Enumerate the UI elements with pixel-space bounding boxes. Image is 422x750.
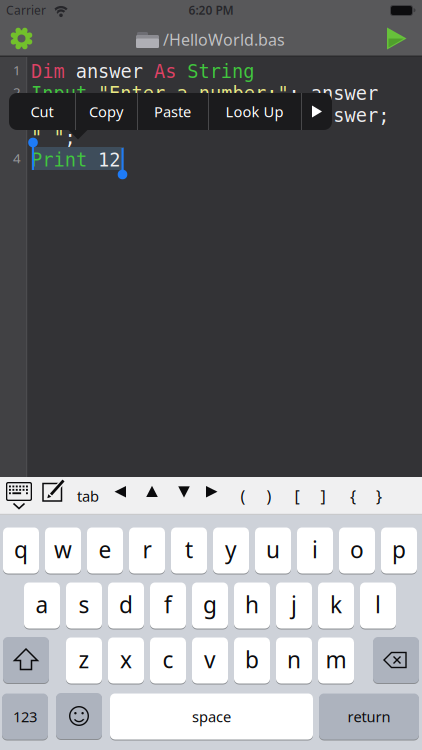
staticText: ( — [240, 485, 245, 507]
button[interactable]: g — [192, 582, 228, 629]
staticText: ] — [320, 485, 325, 507]
button[interactable]: z — [66, 637, 102, 684]
staticText: l — [375, 589, 381, 619]
button[interactable]: h — [234, 582, 270, 629]
staticText: k — [330, 589, 342, 619]
staticText: r — [142, 534, 151, 564]
button[interactable]: Paste — [137, 93, 208, 130]
button[interactable]: a — [24, 582, 60, 629]
button[interactable]: i — [297, 527, 333, 574]
staticText: Dim — [31, 61, 64, 82]
button[interactable]: ] — [310, 477, 336, 515]
button[interactable]: m — [318, 637, 354, 684]
staticText: 6:20 PM — [188, 2, 233, 18]
staticText: a — [35, 589, 48, 619]
staticText: q — [14, 534, 28, 564]
button[interactable]: w — [45, 527, 81, 574]
button[interactable]: Edit — [40, 477, 70, 515]
button[interactable]: d — [108, 582, 144, 629]
button[interactable]: y — [213, 527, 249, 574]
button[interactable]: Cut — [9, 93, 75, 130]
staticText: b — [245, 644, 259, 674]
staticText: Print — [31, 149, 87, 171]
staticText: z — [78, 644, 89, 674]
button[interactable]: Shift — [3, 637, 49, 684]
button[interactable]: Move cursor right — [198, 477, 224, 515]
staticText: " " — [31, 127, 64, 148]
button[interactable]: ( — [230, 477, 256, 515]
button[interactable]: r — [129, 527, 165, 574]
button[interactable]: space — [110, 693, 313, 740]
button[interactable]: tab — [75, 477, 101, 515]
staticText: Look Up — [225, 102, 283, 121]
button[interactable]: Settings — [0, 20, 44, 57]
button[interactable]: Copy — [75, 93, 137, 130]
button[interactable]: Emoji — [56, 693, 102, 740]
button[interactable]: t — [171, 527, 207, 574]
staticText: y — [225, 534, 237, 564]
button[interactable]: [ — [284, 477, 310, 515]
staticText: o — [350, 534, 364, 564]
button[interactable]: File /HelloWorld.bas — [135, 20, 305, 57]
button[interactable]: f — [150, 582, 186, 629]
staticText: Input — [31, 83, 87, 104]
button[interactable]: ) — [256, 477, 282, 515]
staticText: "You entered: " — [98, 105, 288, 126]
staticText: /HelloWorld.bas — [163, 29, 285, 50]
button[interactable]: { — [340, 477, 366, 515]
button[interactable]: o — [339, 527, 375, 574]
button[interactable]: c — [150, 637, 186, 684]
button[interactable]: v — [192, 637, 228, 684]
button[interactable]: k — [318, 582, 354, 629]
staticText: Cut — [30, 102, 53, 121]
button[interactable]: Move cursor left — [107, 477, 133, 515]
button[interactable]: Run — [380, 20, 420, 57]
staticText: Carrier — [6, 2, 46, 18]
staticText: n — [287, 644, 301, 674]
staticText: f — [164, 589, 172, 619]
staticText: } — [376, 485, 382, 507]
staticText: 2 — [13, 83, 21, 101]
button[interactable]: More menu items — [301, 93, 332, 130]
button[interactable]: u — [255, 527, 291, 574]
button[interactable]: e — [87, 527, 123, 574]
button[interactable]: 123 — [2, 693, 48, 740]
staticText: ; — [64, 127, 75, 148]
button[interactable]: x — [108, 637, 144, 684]
staticText: ; answer — [288, 83, 378, 104]
staticText: p — [392, 534, 406, 564]
staticText: As — [154, 61, 176, 82]
staticText: c — [162, 644, 173, 674]
button[interactable]: } — [366, 477, 392, 515]
staticText: space — [192, 707, 231, 726]
staticText: h — [245, 589, 259, 619]
staticText: Print — [31, 105, 87, 126]
staticText: j — [291, 589, 297, 619]
staticText: String — [187, 61, 254, 82]
button[interactable]: Move cursor up — [139, 477, 165, 515]
button[interactable]: return — [319, 693, 419, 740]
button[interactable]: j — [276, 582, 312, 629]
button[interactable]: p — [381, 527, 417, 574]
button[interactable]: Dismiss keyboard — [0, 477, 38, 515]
button[interactable]: q — [3, 527, 39, 574]
staticText: 12 — [87, 149, 120, 171]
button[interactable]: n — [276, 637, 312, 684]
staticText: { — [350, 485, 356, 507]
button[interactable]: Move cursor down — [171, 477, 197, 515]
staticText: g — [203, 589, 217, 619]
staticText: answer — [64, 61, 154, 82]
button[interactable]: b — [234, 637, 270, 684]
staticText: t — [185, 534, 193, 564]
button[interactable]: s — [66, 582, 102, 629]
staticText: return — [347, 707, 390, 726]
button[interactable]: Delete — [373, 637, 419, 684]
staticText: 1 — [13, 61, 21, 79]
button[interactable]: l — [360, 582, 396, 629]
staticText: ) — [266, 485, 271, 507]
staticText: m — [325, 644, 346, 674]
staticText: ; answer; — [288, 105, 389, 126]
button[interactable]: Look Up — [208, 93, 301, 130]
